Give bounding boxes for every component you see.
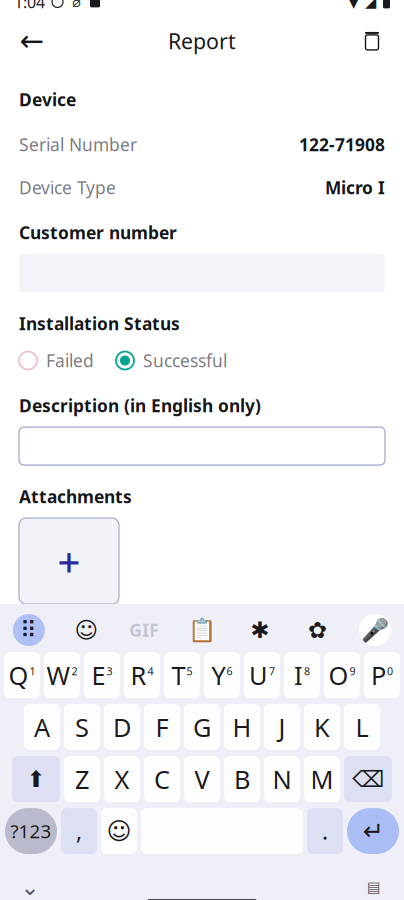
button[interactable]: Add attachment <box>19 518 119 604</box>
button[interactable]: T <box>164 652 200 698</box>
staticText: ⠿ <box>20 617 37 643</box>
staticText: . <box>322 816 328 846</box>
staticText: H <box>232 710 251 744</box>
staticText: R <box>130 658 146 692</box>
staticText: 1:04 <box>14 0 45 12</box>
button[interactable]: Shift <box>12 756 60 802</box>
staticText: J <box>278 710 285 744</box>
staticText: Y <box>211 658 225 692</box>
button[interactable]: Q <box>4 652 40 698</box>
button[interactable]: D <box>104 704 140 750</box>
button[interactable]: Emoji <box>101 808 137 854</box>
button[interactable]: Successful <box>116 349 227 372</box>
button[interactable]: Z <box>64 756 100 802</box>
staticText: Report <box>168 27 236 55</box>
staticText: Z <box>75 762 89 796</box>
staticText: Installation Status <box>19 312 180 335</box>
button[interactable]: X <box>104 756 140 802</box>
button[interactable]: Clipboard <box>173 608 231 652</box>
button[interactable]: R <box>124 652 160 698</box>
staticText: B <box>234 762 250 796</box>
button[interactable]: S <box>64 704 100 750</box>
staticText: 6 <box>226 664 232 678</box>
staticText: 9 <box>349 664 355 678</box>
staticText: 🎤 <box>361 617 389 643</box>
button[interactable]: P <box>364 652 400 698</box>
staticText: ⌀ <box>72 0 81 10</box>
button[interactable]: Delete <box>348 17 396 65</box>
button[interactable]: N <box>264 756 300 802</box>
staticText: + <box>57 534 80 588</box>
button[interactable] <box>19 427 385 465</box>
staticText: Attachments <box>19 485 132 508</box>
button[interactable]: Themes <box>289 608 346 652</box>
button[interactable]: W <box>44 652 80 698</box>
staticText: ⌄ <box>20 874 39 900</box>
button[interactable]: Clipboard grid <box>0 608 58 652</box>
button[interactable]: I <box>284 652 320 698</box>
staticText: ▤ <box>367 879 381 895</box>
button[interactable]: F <box>144 704 180 750</box>
staticText: Successful <box>143 349 227 372</box>
button[interactable]: C <box>144 756 180 802</box>
staticText: Device Type <box>19 176 116 199</box>
button[interactable]: Back <box>8 17 56 65</box>
staticText: N <box>272 762 291 796</box>
button[interactable]: G <box>184 704 220 750</box>
staticText: K <box>314 710 330 744</box>
staticText: 3 <box>106 664 112 678</box>
staticText: O <box>328 658 348 692</box>
staticText: ⬆ <box>26 766 45 792</box>
staticText: W <box>46 658 70 692</box>
staticText: ↵ <box>362 817 383 845</box>
button[interactable]: Stickers <box>58 608 115 652</box>
button[interactable]: ?123 <box>5 808 57 854</box>
button[interactable]: Backspace <box>344 756 392 802</box>
button[interactable]: V <box>184 756 220 802</box>
button[interactable]: Failed <box>19 349 94 372</box>
staticText: U <box>249 658 268 692</box>
button[interactable]: M <box>304 756 340 802</box>
button[interactable]: Switch keyboard <box>350 866 398 900</box>
staticText: A <box>34 710 50 744</box>
staticText: ⌫ <box>352 766 384 792</box>
staticText: Micro I <box>325 176 385 199</box>
button[interactable]: Y <box>204 652 240 698</box>
staticText: 8 <box>304 664 310 678</box>
staticText: ← <box>19 24 44 58</box>
button[interactable]: Enter <box>347 808 399 854</box>
button[interactable]: , <box>61 808 97 854</box>
staticText: M <box>310 762 333 796</box>
button[interactable]: H <box>224 704 260 750</box>
staticText: L <box>355 710 368 744</box>
button[interactable]: A <box>24 704 60 750</box>
button[interactable]: Hide keyboard <box>6 866 54 900</box>
staticText: V <box>194 762 209 796</box>
staticText: I <box>294 658 303 692</box>
staticText: Failed <box>46 349 94 372</box>
button[interactable]: K <box>304 704 340 750</box>
button[interactable]: E <box>84 652 120 698</box>
staticText: ✱ <box>250 617 269 643</box>
staticText: D <box>113 710 131 744</box>
button[interactable]: GIF <box>115 608 173 652</box>
staticText: S <box>75 710 89 744</box>
staticText: 122-71908 <box>299 133 385 156</box>
button[interactable]: L <box>344 704 380 750</box>
staticText: Customer number <box>19 221 177 244</box>
button[interactable]: B <box>224 756 260 802</box>
button[interactable]: O <box>324 652 360 698</box>
button[interactable]: J <box>264 704 300 750</box>
staticText: 5 <box>186 664 192 678</box>
staticText: 4 <box>147 664 153 678</box>
staticText: Serial Number <box>19 133 137 156</box>
button[interactable]: Settings <box>231 608 289 652</box>
button[interactable]: Voice input <box>346 608 404 652</box>
button[interactable]: . <box>307 808 343 854</box>
staticText: , <box>76 816 82 846</box>
staticText: G <box>193 710 211 744</box>
staticText: Device <box>19 88 76 111</box>
button[interactable]: U <box>244 652 280 698</box>
